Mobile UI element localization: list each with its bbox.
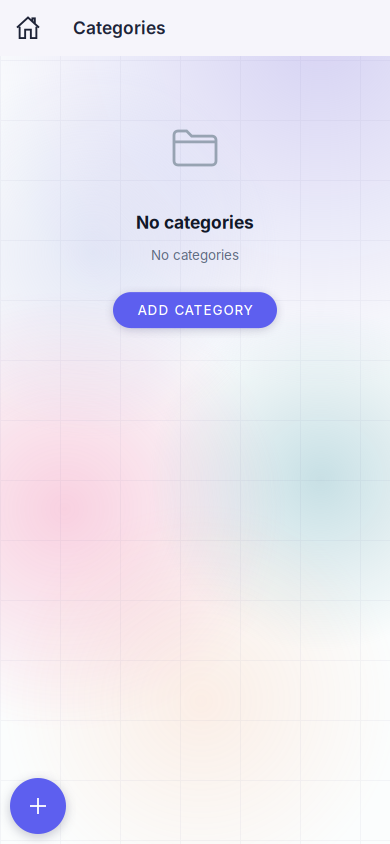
staticText: ADD CATEGORY [137, 302, 252, 318]
button[interactable]: Add category [10, 778, 66, 834]
button[interactable]: ADD CATEGORY [113, 292, 277, 328]
staticText: No categories [136, 212, 254, 233]
button[interactable]: Home [0, 0, 56, 56]
staticText: No categories [151, 247, 239, 263]
staticText: Categories [73, 17, 166, 38]
